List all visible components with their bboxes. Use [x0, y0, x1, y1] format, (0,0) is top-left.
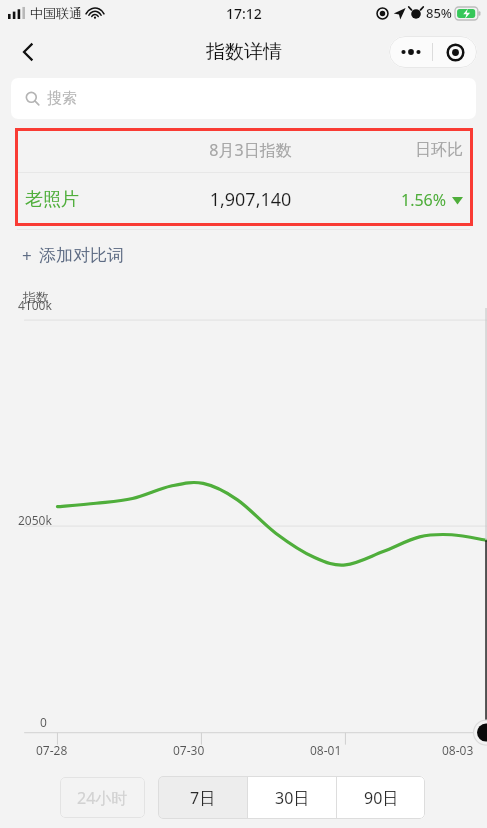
- staticText: 4100k: [18, 297, 52, 313]
- staticText: +: [22, 244, 32, 267]
- button[interactable]: 搜索: [11, 78, 476, 119]
- staticText: 24小时: [77, 787, 128, 809]
- staticText: 90日: [364, 787, 399, 809]
- button[interactable]: 90日: [337, 776, 425, 819]
- staticText: 30日: [275, 787, 310, 809]
- staticText: 07-28: [36, 742, 68, 758]
- staticText: 08-03: [442, 742, 474, 758]
- button[interactable]: Back: [6, 30, 50, 74]
- staticText: 1,907,140: [164, 187, 337, 212]
- button[interactable]: More: [389, 36, 432, 68]
- staticText: 指数: [23, 289, 49, 305]
- staticText: 搜索: [47, 89, 77, 108]
- staticText: 07-30: [173, 742, 205, 758]
- staticText: 17:12: [226, 4, 262, 23]
- button[interactable]: 7日: [158, 776, 247, 819]
- staticText: 08-01: [310, 742, 342, 758]
- staticText: 添加对比词: [39, 245, 124, 266]
- staticText: 85%: [426, 4, 452, 22]
- button[interactable]: 老照片: [25, 173, 463, 226]
- staticText: 8月3日指数: [164, 139, 337, 161]
- staticText: 指数详情: [206, 40, 282, 64]
- staticText: 日环比: [337, 140, 463, 160]
- button[interactable]: +: [22, 244, 124, 267]
- button[interactable]: Close: [433, 36, 477, 68]
- staticText: 中国联通: [30, 5, 82, 21]
- staticText: 7日: [190, 787, 216, 809]
- button[interactable]: 30日: [248, 776, 336, 819]
- staticText: 2050k: [18, 512, 52, 528]
- staticText: 1.56%: [401, 189, 447, 211]
- staticText: 0: [40, 714, 47, 730]
- button[interactable]: 24小时: [60, 777, 145, 818]
- staticText: 老照片: [25, 188, 164, 211]
